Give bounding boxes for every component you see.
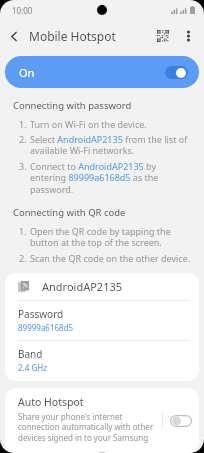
staticText: Mobile Hotspot	[29, 28, 116, 44]
staticText: Connecting with password	[13, 99, 132, 112]
staticText: Password	[18, 307, 64, 321]
staticText: 1.	[19, 225, 30, 237]
staticText: Band	[18, 347, 43, 361]
button[interactable]: AndroidAP2135	[5, 273, 199, 300]
staticText: Open the QR code by tapping the button a…	[30, 225, 191, 249]
staticText: Share your phone's internet connection a…	[18, 411, 156, 445]
button[interactable]: On	[5, 56, 199, 88]
staticText: Select AndroidAP2135 from the list of av…	[30, 133, 191, 157]
staticText: Scan the QR code on the other device.	[30, 252, 191, 264]
button[interactable]: Auto Hotspot toggle	[170, 415, 192, 427]
staticText: 2.	[19, 133, 30, 145]
staticText: On	[19, 65, 35, 80]
button[interactable]: More options	[176, 24, 200, 48]
button[interactable]: Back	[0, 22, 28, 50]
staticText: Turn on Wi-Fi on the device.	[30, 118, 147, 130]
staticText: Auto Hotspot	[18, 395, 84, 409]
staticText: 10:00	[12, 5, 33, 16]
staticText: Connect to AndroidAP2135 by entering 899…	[30, 160, 191, 196]
button[interactable]: Password	[5, 301, 199, 340]
button[interactable]: Show QR code	[150, 23, 176, 49]
staticText: 2.	[19, 252, 30, 264]
staticText: 2.4 GHz	[18, 362, 47, 373]
staticText: Connecting with QR code	[13, 206, 126, 219]
button[interactable]: Auto Hotspot	[5, 388, 199, 453]
staticText: 89999a6168d5	[18, 322, 74, 333]
staticText: 1.	[19, 118, 30, 130]
staticText: 3.	[19, 160, 30, 172]
button[interactable]: Band	[5, 341, 199, 381]
staticText: AndroidAP2135	[42, 279, 123, 294]
